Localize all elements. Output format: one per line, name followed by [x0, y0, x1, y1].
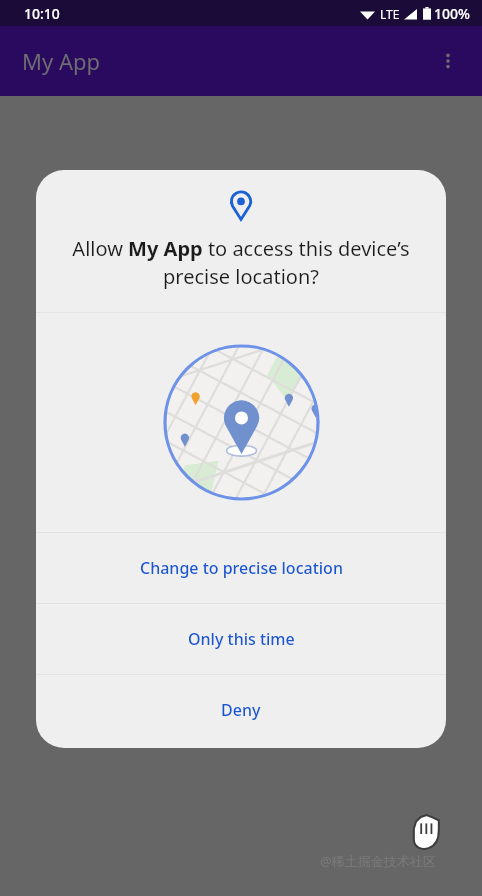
staticText: 10:10: [24, 4, 60, 23]
staticText: Deny: [221, 699, 261, 721]
button[interactable]: Only this time: [36, 604, 446, 674]
staticText: LTE: [380, 6, 400, 22]
button[interactable]: More options: [426, 39, 470, 83]
staticText: @稀土掘金技术社区: [320, 852, 436, 870]
staticText: Change to precise location: [140, 557, 343, 579]
staticText: 100%: [434, 4, 470, 23]
button[interactable]: Deny: [36, 675, 446, 745]
staticText: Allow My App to access this device’s pre…: [58, 235, 424, 290]
button[interactable]: Change to precise location: [36, 533, 446, 603]
staticText: Only this time: [188, 628, 295, 650]
staticText: My App: [22, 46, 101, 76]
